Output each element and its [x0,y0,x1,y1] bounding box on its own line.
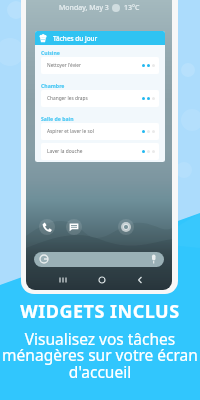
button[interactable]: Nettoyer l'évier [47,57,155,74]
staticText: Visualisez vos tâches ménagères sur votr… [2,328,198,383]
button[interactable]: Chrome [118,219,134,235]
staticText: Tâches du jour [53,34,98,43]
button[interactable]: Messages [66,219,82,235]
button[interactable]: Search [34,252,164,267]
button[interactable]: Recents [57,274,69,286]
button[interactable]: Tâches du jour [38,31,165,45]
staticText: Nettoyer l'évier [47,62,82,69]
button[interactable]: Back [134,274,146,286]
staticText: Chambre [41,82,65,89]
button[interactable]: Changer les draps [47,90,155,107]
staticText: 13°C [124,3,140,13]
staticText: Aspirer et laver le sol [47,128,94,135]
button[interactable]: Aspirer et laver le sol [47,123,155,140]
staticText: Salle de bain [41,115,74,122]
staticText: WIDGETS INCLUS [20,299,180,324]
staticText: Cuisine [41,49,60,56]
button[interactable]: Home [96,274,108,286]
button[interactable]: Laver la douche [47,143,155,160]
staticText: Changer les draps [47,95,88,102]
staticText: Laver la douche [47,148,83,155]
button[interactable]: Phone [39,219,55,235]
staticText: Monday, May 3 [59,3,109,13]
